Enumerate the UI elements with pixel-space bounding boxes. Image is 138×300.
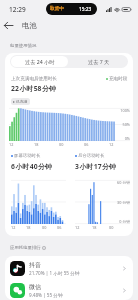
staticText: 00	[59, 142, 64, 147]
staticText: 3 小时 17 分钟	[75, 162, 116, 171]
staticText: 12	[9, 142, 14, 147]
staticText: 60 分钟	[115, 180, 130, 185]
staticText: 12	[109, 142, 114, 147]
button[interactable]: 过去 24 小时	[11, 56, 68, 67]
staticText: 0 分钟	[115, 219, 130, 224]
staticText: 30 分钟	[115, 200, 130, 205]
staticText: 12:29	[9, 5, 26, 14]
staticText: 过去 7 天	[88, 58, 110, 65]
button[interactable]: 过去 7 天	[69, 55, 128, 68]
staticText: 18	[34, 142, 39, 147]
staticText: 过去 24 小时	[25, 58, 55, 65]
staticText: 后台活动时长	[78, 153, 105, 159]
staticText: 22 小时 58 分钟	[11, 84, 56, 93]
staticText: 微信	[29, 283, 41, 291]
staticText: 取货中	[50, 6, 64, 12]
staticText: 18	[92, 225, 97, 230]
staticText: 00	[109, 225, 114, 230]
staticText: 电量使用情况	[10, 43, 37, 49]
staticText: 6 小时 40 分钟	[11, 162, 52, 171]
button[interactable]: 微信	[5, 280, 133, 300]
staticText: 已充满	[16, 99, 28, 104]
button[interactable]: 返回	[1, 18, 16, 33]
staticText: 21.70% | 1 小时 55 分钟	[29, 270, 80, 276]
staticText: 上次充满电后使用时长	[11, 76, 57, 82]
staticText: 抖音	[29, 261, 41, 269]
staticText: 充电时段	[109, 76, 128, 82]
staticText: 9.48% | 55 分钟	[29, 292, 63, 298]
staticText: 电池	[22, 21, 37, 30]
staticText: 06	[57, 225, 62, 230]
staticText: 18	[26, 225, 31, 230]
staticText: 应用耗电量排行	[10, 245, 41, 251]
staticText: 0%	[116, 136, 130, 141]
staticText: 15:23	[79, 6, 92, 13]
staticText: 50%	[116, 122, 130, 127]
staticText: 屏幕活动时长	[14, 153, 41, 159]
staticText: 12	[11, 225, 16, 230]
staticText: 00	[42, 225, 47, 230]
staticText: 12	[75, 225, 80, 230]
staticText: 06	[84, 142, 89, 147]
staticText: 100%	[116, 108, 130, 113]
button[interactable]: 抖音	[5, 256, 133, 280]
